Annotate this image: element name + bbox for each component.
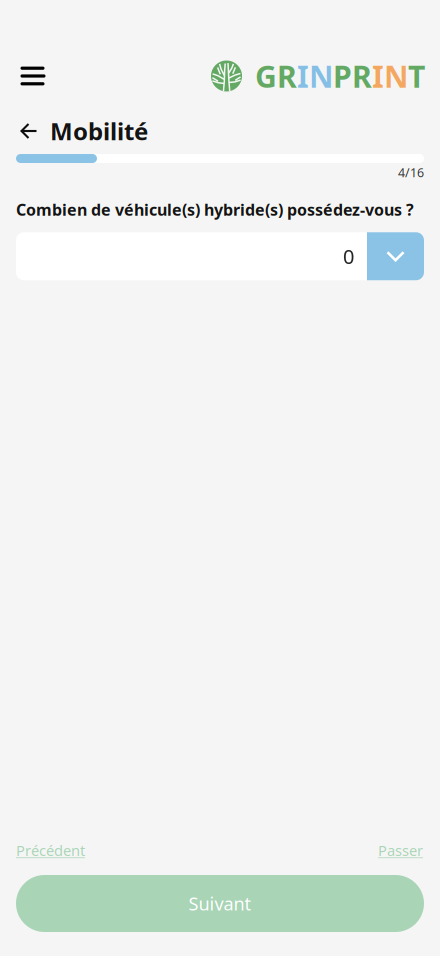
staticText: Précédent: [16, 840, 85, 860]
staticText: 0: [343, 243, 354, 270]
staticText: IN: [297, 55, 333, 96]
button[interactable]: Passer: [378, 840, 423, 860]
staticText: Mobilité: [50, 115, 148, 147]
staticText: Passer: [378, 840, 423, 860]
staticText: Combien de véhicule(s) hybride(s) posséd…: [16, 199, 414, 220]
staticText: GR: [255, 55, 297, 96]
staticText: T: [408, 55, 425, 96]
button[interactable]: Précédent: [16, 840, 85, 860]
button[interactable]: Back: [17, 118, 41, 144]
staticText: Suivant: [188, 891, 251, 916]
button[interactable]: Choose a value: [367, 232, 424, 280]
button[interactable]: Menu: [11, 56, 55, 96]
button[interactable]: Suivant: [16, 875, 424, 932]
staticText: 4/16: [398, 164, 424, 181]
button[interactable]: GrinPrint: [211, 56, 425, 96]
staticText: IN: [372, 55, 408, 96]
staticText: PR: [333, 55, 372, 96]
